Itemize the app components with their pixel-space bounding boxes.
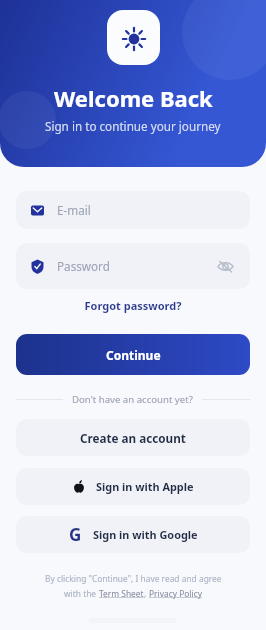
- staticText: Don't have an account yet?: [72, 393, 193, 406]
- staticText: Sign in to continue your journey: [45, 118, 221, 134]
- staticText: G: [69, 523, 82, 546]
- button[interactable]: Continue: [16, 334, 250, 375]
- staticText: Continue: [106, 347, 161, 363]
- staticText: Sign in with Apple: [96, 479, 194, 494]
- staticText: with the: [64, 588, 99, 599]
- button[interactable]: Term Sheet: [99, 588, 144, 599]
- button[interactable]: G: [16, 516, 250, 553]
- button[interactable]: E-mail: [16, 191, 250, 229]
- staticText: By clicking "Continue", I have read and …: [45, 573, 222, 584]
- button[interactable]: Password: [16, 243, 250, 289]
- staticText: Create an account: [80, 430, 186, 446]
- button[interactable]: Create an account: [16, 419, 250, 456]
- staticText: Sign in with Google: [93, 527, 198, 542]
- staticText: Welcome Back: [54, 83, 213, 113]
- staticText: ,: [144, 588, 149, 599]
- button[interactable]: Privacy Policy: [149, 588, 202, 599]
- staticText: Password: [57, 258, 110, 274]
- button[interactable]: Show password: [217, 258, 234, 275]
- staticText: E-mail: [57, 202, 91, 218]
- button[interactable]: Sign in with Apple: [16, 468, 250, 505]
- button[interactable]: Forgot password?: [0, 298, 266, 313]
